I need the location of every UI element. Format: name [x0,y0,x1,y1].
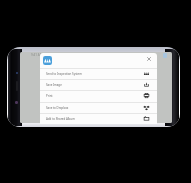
staticText: Print [46,94,53,98]
button[interactable]: Print [40,90,157,101]
button[interactable]: Inspection System [43,56,52,65]
button[interactable]: Send to Inspection System [40,68,157,79]
button[interactable]: Save Image [40,79,157,90]
staticText: Save Image [46,83,62,87]
button[interactable]: Add to Shared Album [40,113,157,124]
staticText: 9:41 AM [31,53,43,57]
staticText: Save to Dropbox [46,106,69,110]
button[interactable]: Close [145,55,153,63]
button[interactable]: Save to Dropbox [40,102,157,113]
staticText: Send to Inspection System [46,72,82,76]
staticText: Add to Shared Album [46,117,75,121]
